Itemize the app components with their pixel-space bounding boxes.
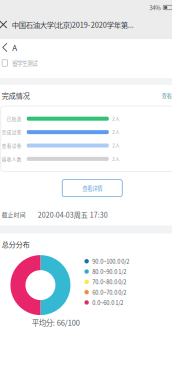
staticText: 80.0~90.0 1/2 (92, 267, 126, 276)
staticText: 截止时间 (2, 210, 26, 219)
staticText: 查看详情 (82, 184, 102, 192)
button[interactable]: Close (0, 16, 12, 33)
staticText: 2人 (112, 156, 120, 162)
staticText: 查看试卷 (162, 92, 172, 99)
staticText: 中国石油大学(北京)2019-2020学年第... (12, 19, 134, 30)
staticText: 平均分: 66/100 (32, 317, 80, 328)
staticText: 2人 (112, 142, 120, 149)
staticText: 2020-04-03周五 17:30 (38, 209, 108, 220)
staticText: 90.0~100.0 0/2 (92, 257, 129, 265)
staticText: 总分分布 (2, 239, 30, 249)
staticText: 2人 (112, 115, 120, 122)
staticText: A (12, 42, 17, 53)
staticText: 60.0~70.0 0/2 (92, 288, 126, 296)
staticText: 34% (149, 3, 161, 12)
staticText: 70.0~80.0 0/2 (92, 278, 126, 286)
button[interactable]: 查看试卷 (153, 87, 172, 103)
staticText: 完成试卷 (2, 129, 22, 135)
staticText: 接收人数 (2, 156, 22, 162)
button[interactable]: Back to A (0, 39, 172, 56)
staticText: 2人 (112, 129, 120, 135)
staticText: 0.0~60.0 1/2 (92, 298, 123, 307)
staticText: 查看试卷 (2, 142, 22, 149)
staticText: 留学生测试 (12, 59, 37, 67)
button[interactable]: 查看详情 (62, 180, 122, 197)
staticText: 已批改 (7, 115, 22, 122)
staticText: 完成情况 (2, 90, 30, 101)
